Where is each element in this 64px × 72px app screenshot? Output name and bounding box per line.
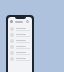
button[interactable] <box>8 19 32 24</box>
button[interactable] <box>8 44 32 50</box>
button[interactable] <box>8 38 32 44</box>
button[interactable] <box>8 50 32 56</box>
button[interactable] <box>8 32 32 38</box>
button[interactable] <box>8 26 32 32</box>
button[interactable] <box>8 56 32 62</box>
